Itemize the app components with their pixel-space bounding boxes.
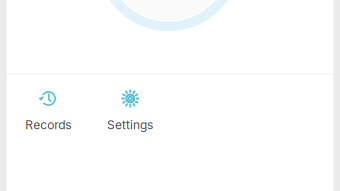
staticText: Settings [107, 118, 153, 132]
button[interactable]: Settings [88, 87, 170, 139]
staticText: Records [25, 118, 71, 132]
button[interactable]: Records [6, 87, 88, 139]
